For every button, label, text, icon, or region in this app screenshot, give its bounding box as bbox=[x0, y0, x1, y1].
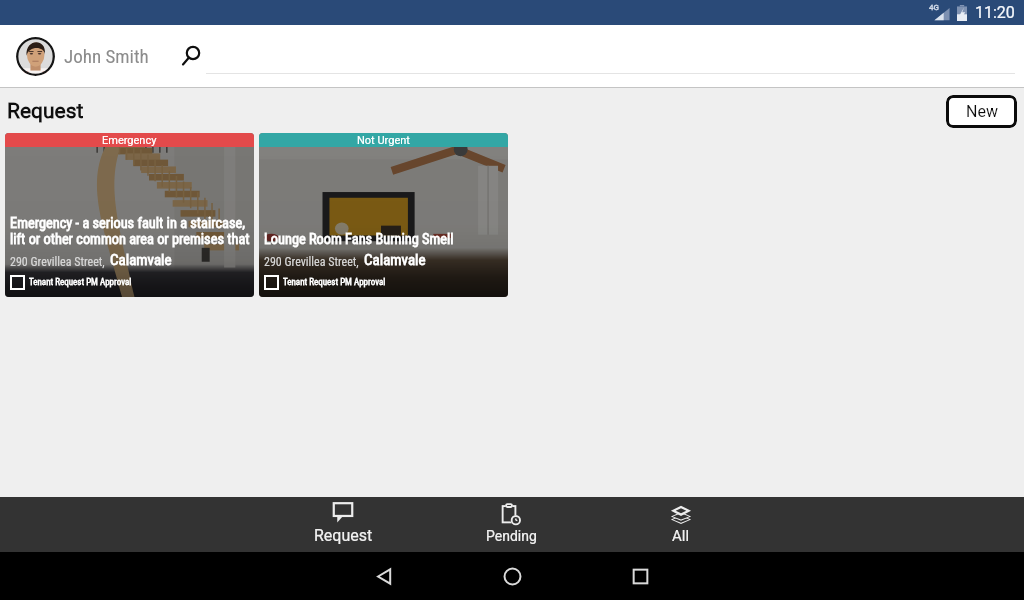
staticText: New bbox=[966, 102, 998, 121]
button[interactable]: New bbox=[946, 95, 1017, 128]
staticText: Emergency - a serious fault in a stairca… bbox=[10, 215, 254, 248]
staticText: Not Urgent bbox=[357, 134, 410, 147]
button[interactable]: Not Urgent bbox=[259, 133, 508, 297]
staticText: Calamvale bbox=[364, 251, 426, 269]
button[interactable]: Emergency bbox=[5, 133, 254, 297]
staticText: 4G bbox=[929, 3, 939, 12]
button[interactable]: Profile bbox=[16, 37, 55, 76]
staticText: Request bbox=[314, 526, 373, 545]
button[interactable]: Tenant Request PM Approval bbox=[264, 275, 279, 290]
button[interactable]: Search field bbox=[206, 25, 1024, 87]
staticText: 290 Grevillea Street, bbox=[10, 255, 105, 269]
button[interactable]: Request bbox=[289, 497, 397, 552]
button[interactable]: Tenant Request PM Approval bbox=[10, 275, 25, 290]
button[interactable]: Home bbox=[448, 552, 576, 600]
staticText: John Smith bbox=[64, 45, 149, 67]
staticText: Tenant Request PM Approval bbox=[29, 277, 132, 288]
staticText: Tenant Request PM Approval bbox=[283, 277, 386, 288]
button[interactable]: All bbox=[627, 497, 735, 552]
staticText: Pending bbox=[486, 528, 537, 544]
staticText: Lounge Room Fans Burning Smell bbox=[264, 231, 454, 248]
staticText: Calamvale bbox=[110, 251, 172, 269]
button[interactable]: Back bbox=[320, 552, 448, 600]
staticText: 290 Grevillea Street, bbox=[264, 255, 359, 269]
button[interactable]: Search bbox=[177, 42, 205, 70]
staticText: Emergency bbox=[102, 134, 157, 147]
staticText: Request bbox=[7, 99, 84, 124]
button[interactable]: Recents bbox=[576, 552, 704, 600]
staticText: All bbox=[672, 527, 690, 545]
button[interactable]: Pending bbox=[457, 497, 565, 552]
staticText: 11:20 bbox=[975, 3, 1015, 22]
